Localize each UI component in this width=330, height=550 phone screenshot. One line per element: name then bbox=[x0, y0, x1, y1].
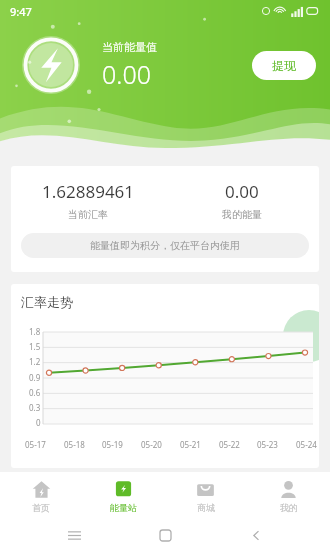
staticText: 1.5 bbox=[29, 341, 41, 352]
staticText: 当前能量值 bbox=[102, 40, 157, 54]
staticText: 05-24 bbox=[296, 439, 317, 450]
staticText: 商城 bbox=[197, 502, 215, 513]
staticText: 0.6 bbox=[29, 387, 41, 398]
staticText: 05-18 bbox=[64, 439, 85, 450]
button[interactable]: Back bbox=[239, 520, 273, 550]
staticText: 我的能量 bbox=[222, 208, 262, 221]
staticText: 05-19 bbox=[102, 439, 123, 450]
staticText: 能量站 bbox=[110, 502, 137, 513]
button[interactable]: Menu bbox=[57, 520, 91, 550]
staticText: 首页 bbox=[32, 502, 50, 513]
staticText: 我的 bbox=[280, 502, 298, 513]
staticText: 0.9 bbox=[29, 372, 41, 383]
staticText: 05-21 bbox=[180, 439, 201, 450]
staticText: 05-23 bbox=[257, 439, 278, 450]
staticText: 1.8 bbox=[29, 326, 41, 337]
staticText: 9:47 bbox=[10, 4, 32, 19]
staticText: 05-22 bbox=[219, 439, 240, 450]
button[interactable]: 商城 bbox=[164, 472, 247, 520]
staticText: 0.00 bbox=[225, 180, 259, 203]
staticText: 汇率走势 bbox=[21, 294, 73, 310]
staticText: 提现 bbox=[272, 58, 296, 73]
staticText: 当前汇率 bbox=[68, 208, 108, 221]
staticText: 05-17 bbox=[25, 439, 46, 450]
staticText: 1.62889461 bbox=[42, 180, 135, 203]
staticText: 能量值即为积分，仅在平台内使用 bbox=[90, 239, 240, 252]
staticText: 0 bbox=[36, 417, 41, 428]
staticText: 0.3 bbox=[29, 402, 41, 413]
staticText: 05-20 bbox=[141, 439, 162, 450]
staticText: 1.2 bbox=[29, 356, 41, 367]
button[interactable]: 提现 bbox=[252, 51, 316, 80]
button[interactable]: 能量站 bbox=[82, 472, 164, 520]
staticText: 0.00 bbox=[102, 57, 151, 91]
button[interactable]: Home bbox=[148, 520, 182, 550]
button[interactable]: 首页 bbox=[0, 472, 82, 520]
button[interactable]: 我的 bbox=[247, 472, 330, 520]
